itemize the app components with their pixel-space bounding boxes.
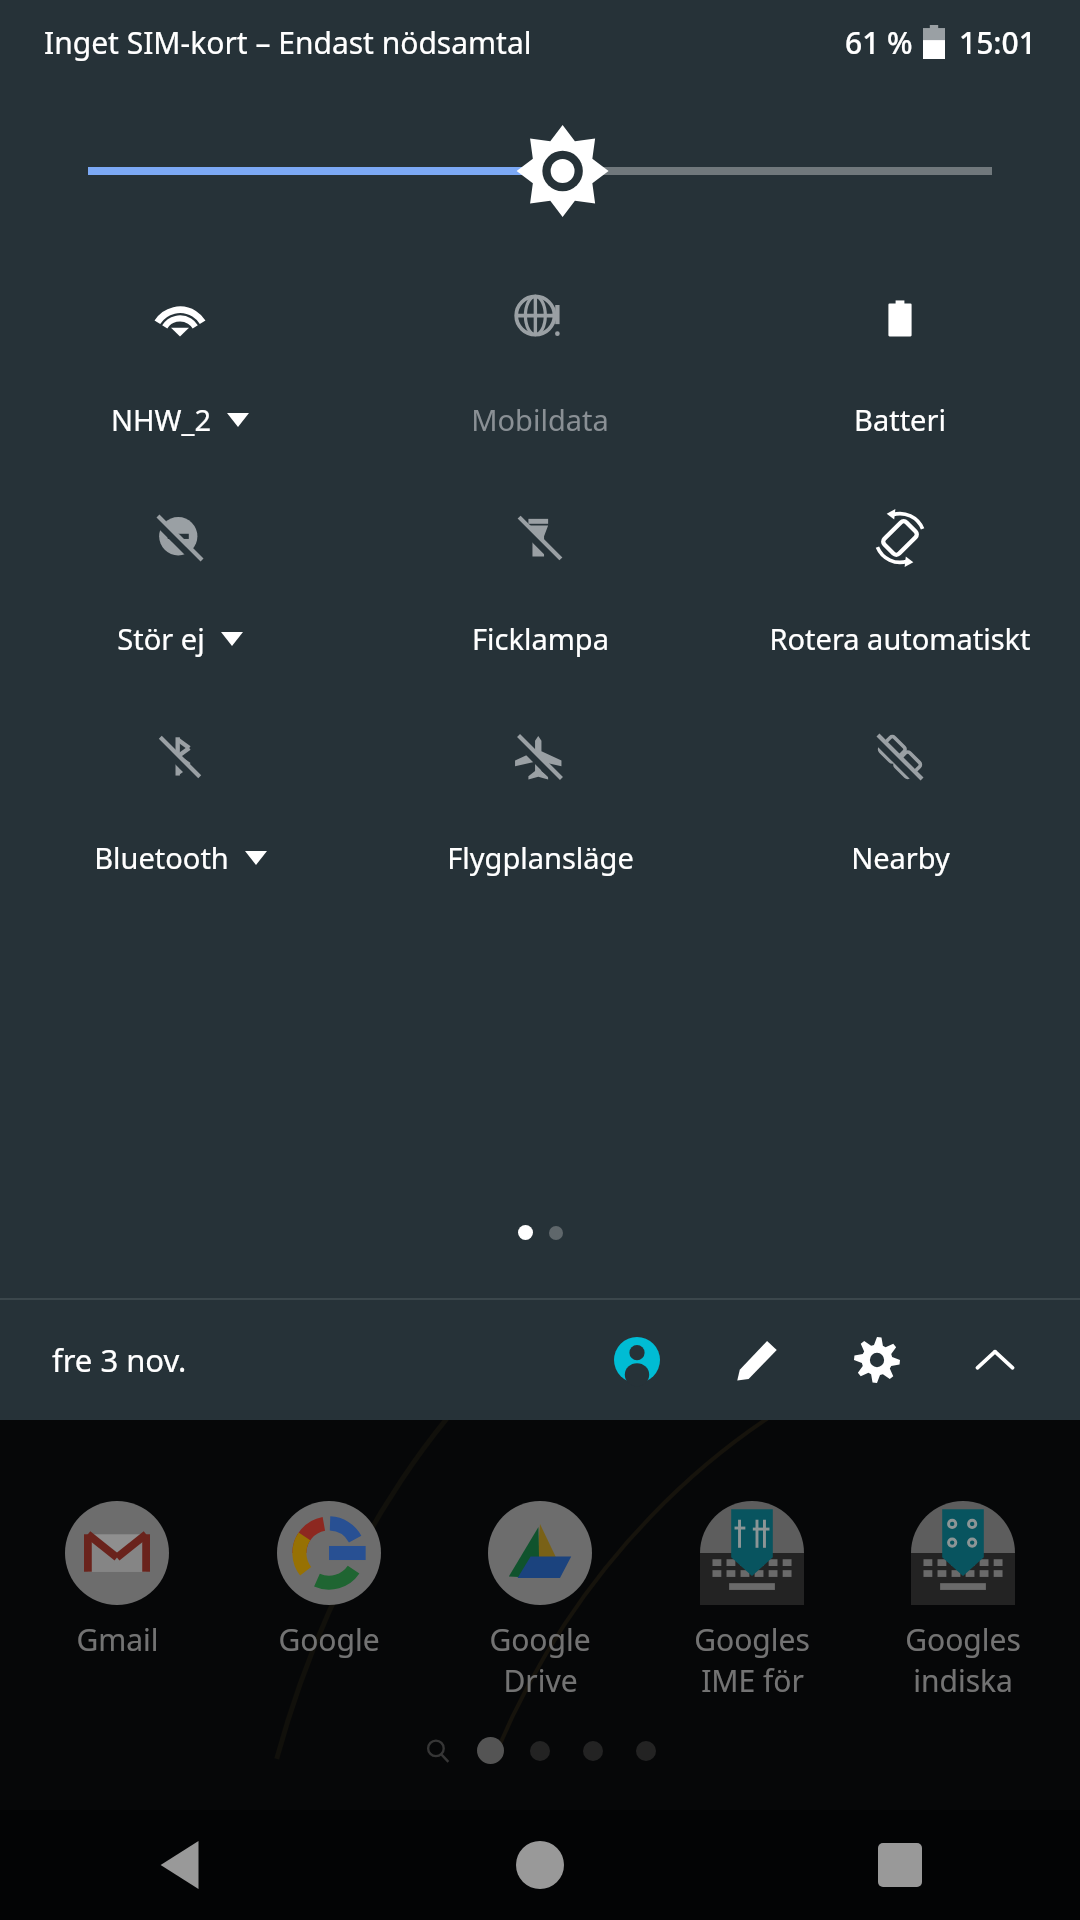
button[interactable]: Brightness [88,128,992,214]
staticText: Googles [694,1619,810,1660]
button[interactable]: Home [360,1810,720,1920]
staticText: IME för [701,1660,804,1701]
staticText: indiska [913,1660,1013,1701]
staticText: Drive [503,1660,578,1701]
button[interactable]: Nearby [720,722,1080,883]
button[interactable]: Ficklampa [360,503,720,664]
button[interactable]: Bluetooth [0,722,360,883]
button[interactable]: Collapse [954,1319,1036,1401]
button[interactable]: Googles [868,1501,1058,1701]
button[interactable]: Google [234,1501,424,1660]
staticText: Bluetooth [94,838,229,877]
staticText: Ficklampa [472,619,609,658]
staticText: fre 3 nov. [52,1339,187,1381]
staticText: NHW_2 [111,400,211,439]
button[interactable]: Rotera automatiskt [720,503,1080,664]
staticText: Googles [905,1619,1021,1660]
staticText: 61 % [845,22,913,63]
staticText: Flygplansläge [447,838,634,877]
button[interactable]: Mobildata [360,284,720,445]
staticText: Google [489,1619,591,1660]
button[interactable]: Settings [836,1319,918,1401]
staticText: Stör ej [117,619,205,658]
button[interactable]: Edit [716,1319,798,1401]
button[interactable]: Flygplansläge [360,722,720,883]
staticText: Rotera automatiskt [769,619,1031,658]
staticText: Inget SIM-kort – Endast nödsamtal [44,22,532,63]
button[interactable]: Stör ej [0,503,360,664]
staticText: Gmail [76,1619,159,1660]
button[interactable]: Batteri [720,284,1080,445]
staticText: Nearby [851,838,950,877]
button[interactable]: Search [425,1738,451,1764]
staticText: 15:01 [959,22,1036,63]
button[interactable]: Back [0,1810,360,1920]
button[interactable]: Recents [720,1810,1080,1920]
staticText: Mobildata [471,400,609,439]
button[interactable]: Gmail [22,1501,212,1660]
button[interactable]: NHW_2 [0,284,360,445]
button[interactable]: Googles [657,1501,847,1701]
staticText: Google [278,1619,380,1660]
staticText: Batteri [854,400,946,439]
button[interactable]: User [596,1319,678,1401]
button[interactable]: Google [445,1501,635,1701]
